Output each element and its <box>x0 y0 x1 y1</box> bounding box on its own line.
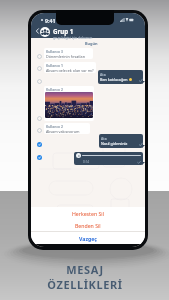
staticText: grup bilgisi için dokunun <box>53 35 93 40</box>
button[interactable]: Ata <box>99 134 143 148</box>
staticText: Ben katılacağım <box>100 77 128 82</box>
staticText: Ata <box>100 72 106 76</box>
button[interactable]: Kullanıcı 3 <box>44 48 93 59</box>
button[interactable]: Kullanıcı 2 <box>44 86 94 121</box>
button[interactable]: Select message <box>35 126 43 134</box>
staticText: 9:41 <box>45 17 56 24</box>
button[interactable]: Group avatar <box>40 27 50 37</box>
button[interactable]: Grup 1 <box>53 27 93 40</box>
staticText: 0:14 <box>83 160 89 164</box>
button[interactable]: Benden Sil <box>31 219 145 231</box>
staticText: Akşam yakışıyorum <box>46 129 80 133</box>
staticText: Benden Sil <box>75 222 101 229</box>
button[interactable]: Message selected <box>35 140 43 148</box>
button[interactable]: Message selected <box>35 153 43 161</box>
staticText: Kullanıcı 2 <box>46 124 63 128</box>
staticText: Vazgeç <box>79 235 97 242</box>
button[interactable]: Select message <box>35 114 43 122</box>
button[interactable]: Vazgeç <box>31 232 145 244</box>
button[interactable]: Herkesten Sil <box>31 207 145 219</box>
staticText: MESAJ <box>66 262 104 277</box>
staticText: ÖZELLİKLERİ <box>47 277 123 292</box>
button[interactable]: Voice message <box>74 152 143 165</box>
staticText: Bugün <box>85 41 98 46</box>
button[interactable]: Ata <box>98 70 143 84</box>
staticText: Akşam gelecek olan var mı? <box>46 68 94 72</box>
button[interactable]: Select message <box>35 52 43 60</box>
button[interactable]: Back <box>34 25 41 37</box>
staticText: Nasıl gidersiniz <box>101 141 128 146</box>
staticText: Herkesten Sil <box>72 210 104 217</box>
staticText: Dönemlerinin fırsatları <box>46 54 86 58</box>
staticText: Kullanıcı 3 <box>46 49 63 53</box>
staticText: Kullanıcı 1 <box>46 63 63 67</box>
button[interactable]: Kullanıcı 2 <box>44 123 90 134</box>
staticText: Kullanıcı 2 <box>46 87 63 91</box>
staticText: Ata <box>101 136 107 140</box>
staticText: Grup 1 <box>53 27 74 35</box>
button[interactable]: Kullanıcı 1 <box>44 62 96 73</box>
button[interactable]: Select message <box>35 77 43 85</box>
button[interactable]: Select message <box>35 64 43 72</box>
